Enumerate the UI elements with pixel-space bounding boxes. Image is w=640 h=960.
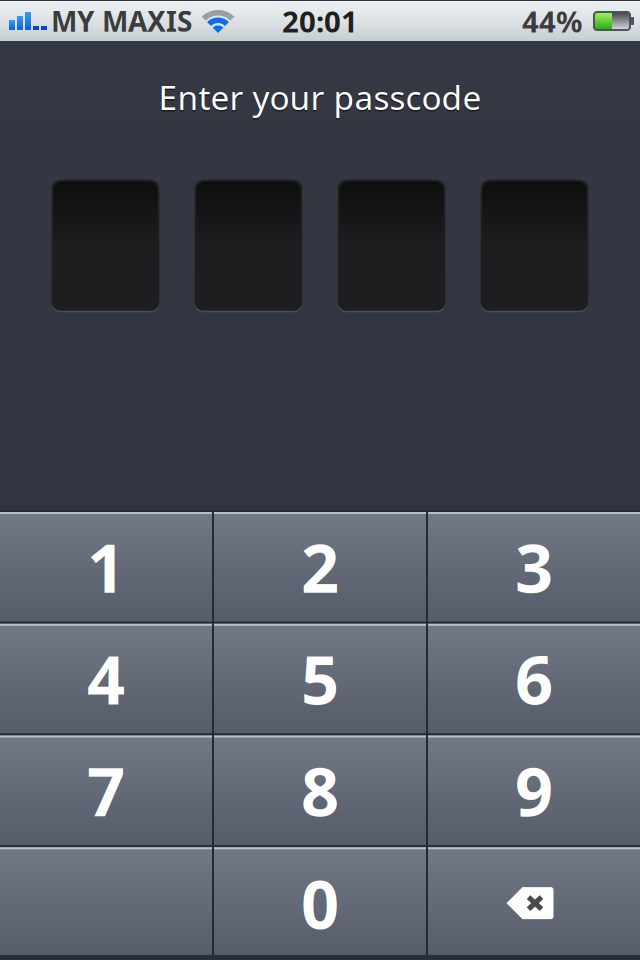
button[interactable]: Delete <box>428 847 640 959</box>
button[interactable]: 4 <box>0 624 212 734</box>
button[interactable]: 3 <box>428 512 640 622</box>
staticText: MY MAXIS <box>51 2 192 40</box>
staticText: 0 <box>301 859 339 947</box>
button[interactable]: 9 <box>428 735 640 845</box>
staticText: 5 <box>301 634 339 723</box>
staticText: 7 <box>87 746 125 835</box>
staticText: Enter your passcode <box>158 76 481 121</box>
button[interactable]: 7 <box>0 735 212 845</box>
button[interactable]: 1 <box>0 512 212 622</box>
staticText: 3 <box>515 523 553 611</box>
button[interactable]: 6 <box>428 624 640 734</box>
button[interactable]: 0 <box>214 847 426 959</box>
staticText: 44% <box>522 1 582 40</box>
staticText: 20:01 <box>282 1 358 40</box>
staticText: 9 <box>515 746 553 835</box>
button[interactable]: 2 <box>214 512 426 622</box>
staticText: 1 <box>87 523 125 611</box>
staticText: 2 <box>301 523 339 611</box>
staticText: 8 <box>301 746 339 835</box>
staticText: 6 <box>515 634 553 723</box>
staticText: Enter your passcode <box>158 75 481 119</box>
staticText: 4 <box>87 634 125 723</box>
button[interactable]: 8 <box>214 735 426 845</box>
button[interactable]: 5 <box>214 624 426 734</box>
